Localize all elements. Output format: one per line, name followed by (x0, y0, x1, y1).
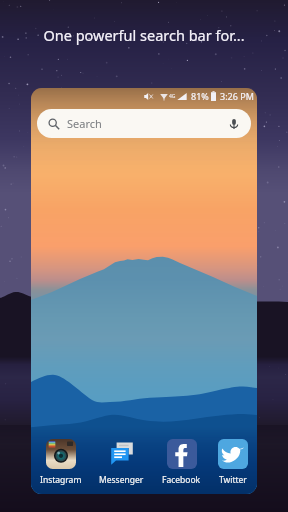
staticText: 4G (169, 93, 176, 100)
button[interactable]: Messenger (98, 439, 145, 486)
button[interactable]: Facebook (161, 439, 202, 486)
button[interactable]: Instagram (39, 439, 83, 486)
staticText: Search (67, 116, 102, 131)
staticText: 81% (191, 90, 209, 102)
staticText: Facebook (162, 474, 201, 486)
staticText: One powerful search bar for... (43, 25, 245, 45)
button[interactable]: Search (37, 109, 251, 138)
staticText: Messenger (99, 474, 144, 486)
staticText: Twitter (219, 474, 247, 486)
staticText: Instagram (40, 474, 82, 486)
staticText: 3:26 PM (220, 90, 254, 102)
button[interactable]: Twitter (217, 439, 249, 486)
